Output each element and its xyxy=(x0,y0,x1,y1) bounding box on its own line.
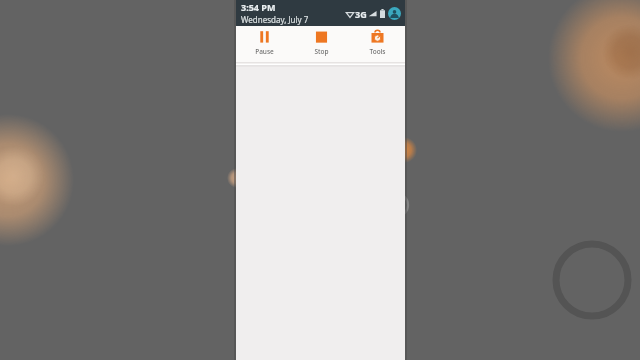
button[interactable]: Stop xyxy=(293,26,349,62)
staticText: Stop xyxy=(314,47,329,56)
button[interactable]: Tools xyxy=(349,26,405,62)
staticText: 3G xyxy=(355,8,367,20)
button[interactable]: Pause xyxy=(236,26,293,62)
staticText: Tools xyxy=(369,47,386,56)
other: Tools xyxy=(370,30,385,45)
other: Pause xyxy=(257,30,272,45)
other: Stop xyxy=(314,30,329,45)
staticText: Wednesday, July 7 xyxy=(241,14,309,25)
staticText: Pause xyxy=(255,47,274,56)
staticText: 3:54 PM xyxy=(241,1,276,13)
